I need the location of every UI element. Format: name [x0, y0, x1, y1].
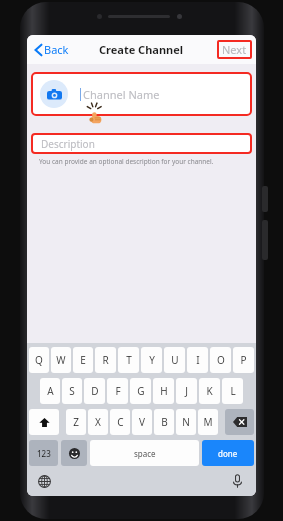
button[interactable]: N	[176, 409, 196, 435]
button[interactable]: V	[132, 409, 152, 435]
button[interactable]: M	[198, 409, 218, 435]
button[interactable]: A	[40, 378, 60, 404]
button[interactable]: D	[84, 378, 105, 404]
button[interactable]: W	[51, 347, 71, 373]
staticText: Q	[35, 353, 43, 367]
staticText: done	[218, 448, 238, 459]
staticText: W	[56, 353, 66, 367]
button[interactable]: Next	[217, 40, 252, 59]
button[interactable]: I	[187, 347, 208, 373]
staticText: K	[206, 384, 213, 398]
staticText: You can provide an optional description …	[39, 157, 214, 166]
button[interactable]: Backspace	[225, 409, 254, 435]
staticText: X	[95, 415, 101, 429]
staticText: E	[80, 353, 86, 367]
button[interactable]: Shift	[29, 409, 59, 435]
button[interactable]: K	[199, 378, 220, 404]
button[interactable]: Back	[33, 39, 71, 60]
button[interactable]: T	[118, 347, 139, 373]
staticText: I	[196, 353, 200, 367]
button[interactable]: G	[130, 378, 151, 404]
button[interactable]: E	[73, 347, 93, 373]
staticText: Back	[44, 42, 69, 57]
staticText: M	[203, 415, 213, 429]
staticText: F	[115, 384, 121, 398]
staticText: U	[171, 353, 179, 367]
staticText: space	[134, 448, 156, 459]
button[interactable]: done	[202, 440, 254, 466]
button[interactable]: space	[90, 440, 199, 466]
staticText: 123	[37, 448, 51, 459]
staticText: C	[117, 415, 124, 429]
button[interactable]: O	[210, 347, 231, 373]
staticText: H	[160, 384, 168, 398]
button[interactable]: H	[153, 378, 174, 404]
button[interactable]: J	[176, 378, 197, 404]
staticText: Channel Name	[83, 87, 160, 102]
staticText: Create Channel	[99, 42, 184, 57]
button[interactable]: C	[110, 409, 130, 435]
staticText: P	[240, 353, 247, 367]
staticText: J	[185, 384, 188, 398]
staticText: B	[161, 415, 168, 429]
button[interactable]: L	[222, 378, 243, 404]
staticText: R	[102, 353, 109, 367]
staticText: V	[139, 415, 145, 429]
staticText: Description	[41, 137, 95, 151]
button[interactable]: U	[164, 347, 185, 373]
staticText: T	[126, 353, 132, 367]
button[interactable]: Change keyboard language	[35, 472, 53, 490]
staticText: Z	[73, 415, 79, 429]
staticText: Y	[149, 353, 155, 367]
button[interactable]: P	[233, 347, 254, 373]
button[interactable]: X	[88, 409, 108, 435]
staticText: L	[230, 384, 236, 398]
other: Add channel photo	[40, 80, 68, 108]
button[interactable]: Description	[31, 133, 252, 154]
staticText: S	[69, 384, 75, 398]
staticText: Next	[222, 42, 247, 57]
button[interactable]: R	[95, 347, 116, 373]
staticText: O	[217, 353, 225, 367]
button[interactable]: Z	[66, 409, 86, 435]
staticText: D	[91, 384, 99, 398]
button[interactable]: Q	[29, 347, 49, 373]
button[interactable]: Add channel photo	[31, 72, 252, 116]
button[interactable]: F	[107, 378, 128, 404]
button[interactable]: Emoji	[61, 440, 87, 466]
button[interactable]: 123	[29, 440, 58, 466]
button[interactable]: Y	[141, 347, 162, 373]
staticText: N	[182, 415, 190, 429]
button[interactable]: B	[154, 409, 174, 435]
staticText: A	[47, 384, 54, 398]
staticText: G	[137, 384, 145, 398]
button[interactable]: S	[62, 378, 82, 404]
button[interactable]: Dictation	[228, 472, 246, 490]
